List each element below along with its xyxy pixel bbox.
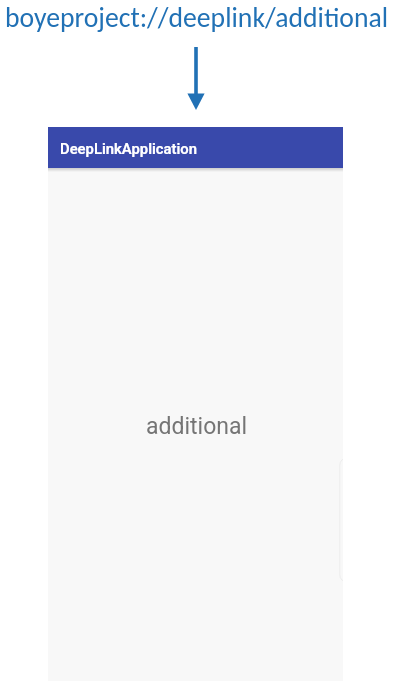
staticText: boyeproject://deeplink/additional [5,1,389,35]
other: Deep link opens the screen below [187,47,205,110]
staticText: additional [146,413,248,440]
staticText: DeepLinkApplication [60,140,197,157]
button[interactable]: DeepLinkApplication [48,127,343,168]
